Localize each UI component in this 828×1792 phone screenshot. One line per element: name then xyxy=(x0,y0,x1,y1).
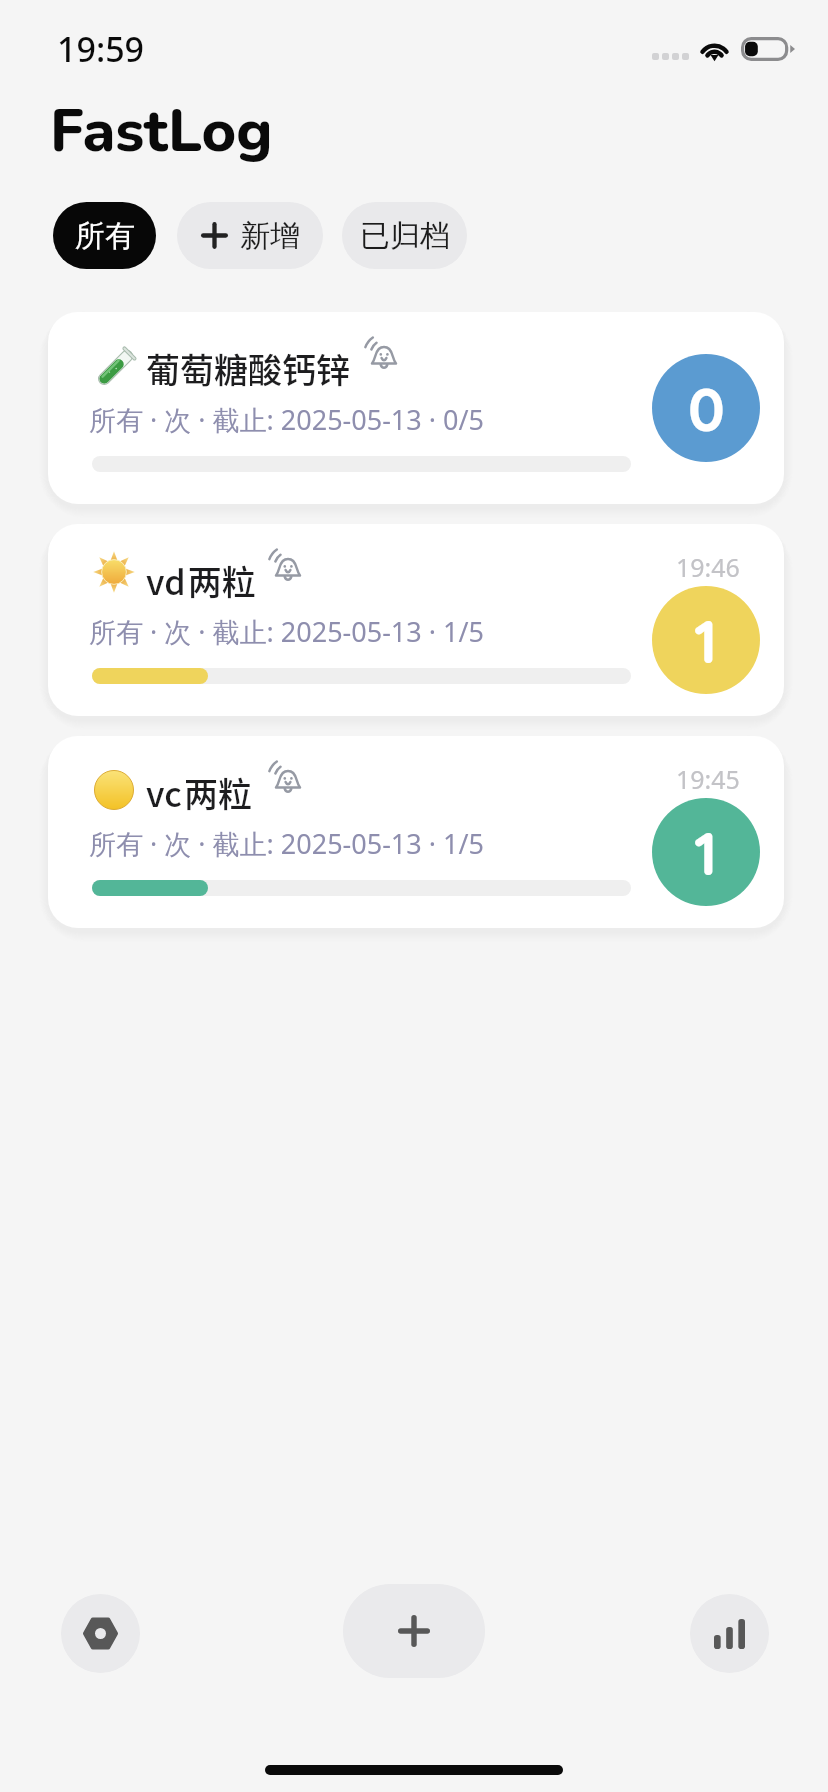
staticText: 新增 xyxy=(240,217,300,255)
staticText: vc 两粒 xyxy=(146,768,253,817)
button[interactable]: 葡萄糖酸钙锌 xyxy=(48,312,784,504)
button[interactable]: vd 两粒 xyxy=(48,524,784,716)
staticText: FastLog xyxy=(50,91,273,171)
button[interactable]: Add xyxy=(343,1584,485,1678)
staticText: 19:46 xyxy=(676,550,740,584)
staticText: 所有 · 次 · 截止: 2025-05-13 · 1/5 xyxy=(89,825,484,862)
button[interactable]: vc 两粒 xyxy=(48,736,784,928)
staticText: 19:45 xyxy=(676,762,740,796)
staticText: 1 xyxy=(694,603,718,678)
staticText: vd 两粒 xyxy=(146,556,256,605)
button[interactable]: 1 xyxy=(652,586,760,694)
staticText: 19:59 xyxy=(57,26,145,72)
button[interactable]: 0 xyxy=(652,354,760,462)
button[interactable]: Record xyxy=(61,1594,140,1673)
staticText: 所有 · 次 · 截止: 2025-05-13 · 0/5 xyxy=(89,401,484,438)
button[interactable]: 已归档 xyxy=(342,202,467,269)
button[interactable]: 所有 xyxy=(53,202,156,269)
staticText: 所有 xyxy=(75,217,135,255)
button[interactable]: Statistics xyxy=(690,1594,769,1673)
button[interactable]: 新增 xyxy=(177,202,323,269)
button[interactable]: 1 xyxy=(652,798,760,906)
staticText: 葡萄糖酸钙锌 xyxy=(146,344,350,393)
staticText: 0 xyxy=(688,371,725,446)
staticText: 所有 · 次 · 截止: 2025-05-13 · 1/5 xyxy=(89,613,484,650)
staticText: 已归档 xyxy=(360,217,450,255)
staticText: 1 xyxy=(694,815,718,890)
